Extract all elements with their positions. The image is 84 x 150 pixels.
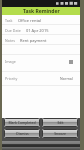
button[interactable]: Snooze <box>42 129 78 138</box>
staticText: Rent payment <box>20 38 47 43</box>
staticText: Priority <box>5 76 18 81</box>
button[interactable]: Mark Completed <box>4 118 40 127</box>
button[interactable]: Edit <box>42 118 78 127</box>
staticText: Notes <box>5 38 15 43</box>
staticText: Task Reminder <box>23 8 60 15</box>
staticText: Edit <box>57 120 64 125</box>
staticText: Dismiss <box>16 131 29 136</box>
staticText: Normal <box>60 76 73 81</box>
staticText: 01 Apr 2015 <box>26 28 49 33</box>
staticText: Image <box>5 59 16 64</box>
staticText: Office rental <box>18 18 42 23</box>
button[interactable]: Dismiss <box>4 129 40 138</box>
staticText: Mark Completed <box>8 120 36 125</box>
staticText: Due Date <box>5 28 21 33</box>
staticText: Task <box>5 18 13 23</box>
staticText: Snooze <box>54 131 66 136</box>
